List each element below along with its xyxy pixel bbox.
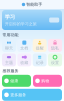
staticText: 设置 [51, 60, 59, 65]
button[interactable]: 收藏 [17, 53, 31, 66]
staticText: 常用功能 [2, 32, 18, 37]
button[interactable]: 健康 [2, 75, 31, 87]
button[interactable]: 更多服务 [2, 89, 62, 101]
button[interactable]: 学习 [2, 10, 62, 30]
button[interactable]: 文档 [17, 39, 31, 52]
staticText: 记录 [36, 60, 44, 65]
staticText: 收藏 [20, 60, 28, 65]
button[interactable]: 购物 [33, 75, 62, 87]
staticText: 健康 [10, 78, 18, 83]
button[interactable]: 主题 [2, 53, 16, 66]
staticText: 文档 [20, 46, 28, 51]
button[interactable]: 聊天 [2, 39, 16, 52]
staticText: 主题 [5, 60, 13, 65]
staticText: 学习 [5, 14, 15, 20]
staticText: 提醒 [36, 46, 44, 51]
staticText: 更多服务 [10, 92, 26, 97]
staticText: 推荐服务 [2, 68, 18, 73]
staticText: 智能助手 [26, 2, 42, 7]
button[interactable]: 隐私 [48, 39, 62, 52]
button[interactable]: 记录 [33, 53, 47, 66]
staticText: 开启你的学习之旅 [5, 21, 37, 26]
staticText: 聊天 [5, 46, 13, 51]
button[interactable]: 设置 [48, 53, 62, 66]
staticText: 隐私 [51, 46, 59, 51]
button[interactable]: 提醒 [33, 39, 47, 52]
staticText: 购物 [41, 78, 49, 83]
